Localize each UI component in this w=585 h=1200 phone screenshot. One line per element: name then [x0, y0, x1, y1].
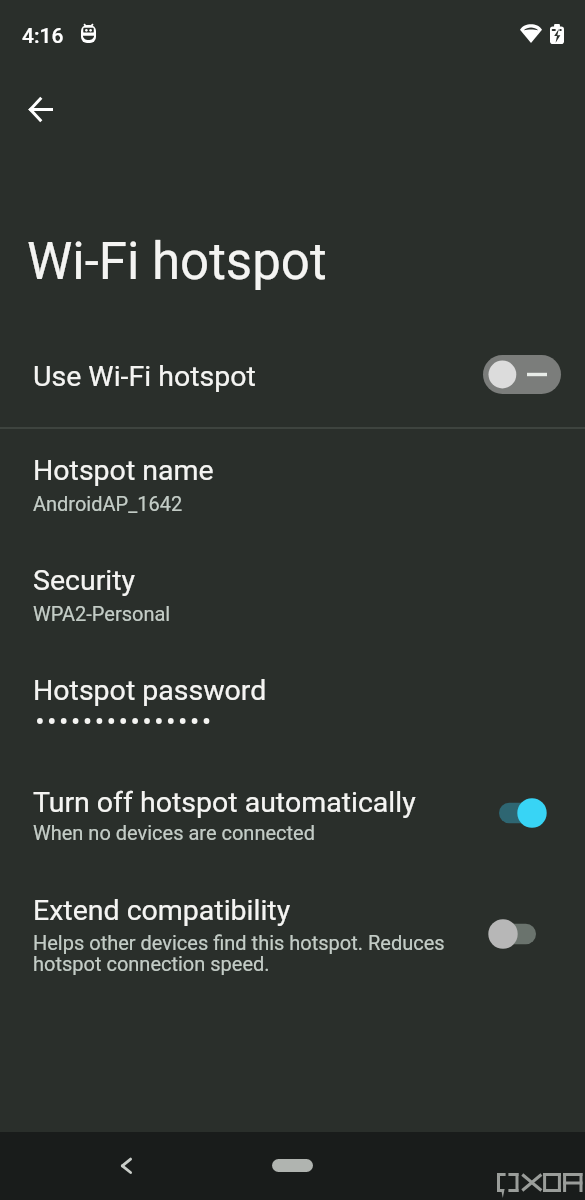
staticText: 4:16 [22, 24, 64, 49]
button[interactable]: Use Wi-Fi hotspot [0, 340, 585, 426]
button[interactable]: Home [272, 1159, 313, 1172]
button[interactable]: Back [102, 1146, 142, 1186]
staticText: Extend compatibility [33, 894, 291, 927]
button[interactable]: Turn off hotspot automatically [0, 766, 585, 866]
staticText: Use Wi-Fi hotspot [33, 360, 256, 393]
button[interactable]: Extend compatibility [0, 876, 585, 996]
staticText: Helps other devices find this hotspot. R… [33, 931, 445, 976]
button[interactable]: Use Wi-Fi hotspot toggle [483, 355, 561, 395]
button[interactable]: Toggle on [489, 797, 547, 829]
button[interactable]: Hotspot name [0, 436, 585, 536]
button[interactable]: Security [0, 546, 585, 646]
button[interactable]: Hotspot password [0, 656, 585, 756]
staticText: AndroidAP_1642 [33, 492, 183, 515]
button[interactable]: Back [8, 76, 72, 140]
staticText: Turn off hotspot automatically [33, 786, 416, 819]
staticText: Wi-Fi hotspot [27, 232, 327, 292]
button[interactable]: Toggle off [490, 918, 548, 950]
staticText: When no devices are connected [33, 821, 315, 844]
staticText: Hotspot name [33, 454, 214, 487]
staticText: Security [33, 564, 136, 597]
staticText: WPA2-Personal [33, 602, 171, 625]
staticText: Hotspot password [33, 674, 267, 707]
